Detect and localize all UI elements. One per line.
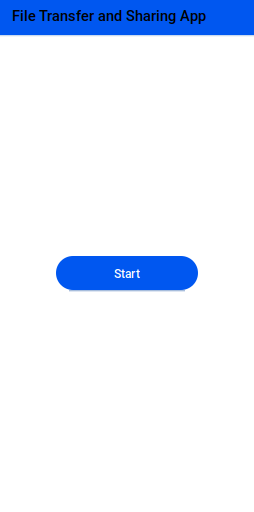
staticText: File Transfer and Sharing App <box>12 7 206 25</box>
staticText: Start <box>114 267 140 281</box>
button[interactable]: Start <box>56 256 198 290</box>
